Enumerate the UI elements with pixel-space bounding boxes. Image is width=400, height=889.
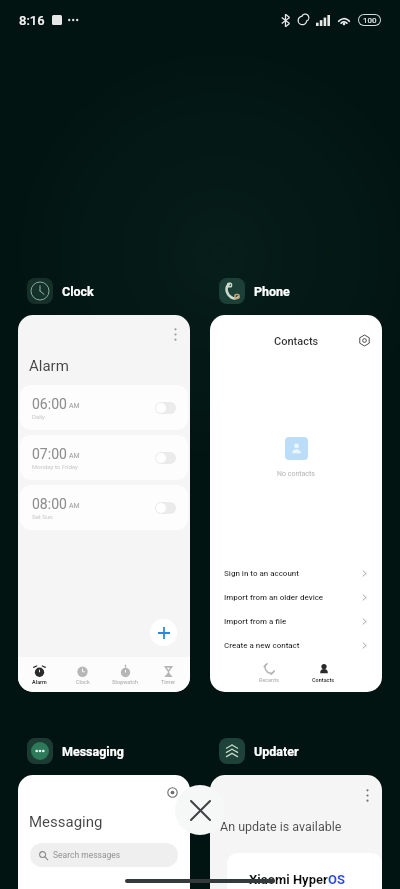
button[interactable]: Close (175, 785, 225, 835)
button[interactable]: Toggle alarm (155, 402, 176, 414)
button[interactable]: Create a new contact (210, 633, 382, 657)
staticText: 07:00 (32, 446, 67, 462)
button[interactable]: Updater (219, 738, 299, 764)
button[interactable]: Timer (147, 665, 190, 685)
staticText: Recents (259, 677, 279, 683)
button[interactable]: Import from a file (210, 609, 382, 633)
staticText: Stopwatch (112, 679, 139, 685)
staticText: An update is available (220, 819, 342, 834)
button[interactable]: Phone (219, 278, 290, 304)
staticText: Sign in to an account (224, 569, 299, 578)
button[interactable]: Alarm (18, 665, 61, 685)
staticText: Xiaomi Hyper (249, 872, 328, 887)
button[interactable]: Import from an older device (210, 585, 382, 609)
staticText: OS (328, 872, 345, 887)
button[interactable]: Toggle alarm (155, 502, 176, 514)
staticText: 8:16 (19, 13, 45, 28)
staticText: Contacts (274, 335, 319, 348)
button[interactable]: Account (167, 787, 178, 798)
button[interactable]: Add alarm (150, 619, 177, 646)
button[interactable]: Messaging (27, 738, 124, 764)
staticText: Daily (32, 413, 45, 420)
staticText: Alarm (29, 357, 69, 375)
staticText: 100 (363, 16, 377, 25)
staticText: Messaging (62, 744, 124, 759)
button[interactable]: Toggle alarm (155, 452, 176, 464)
staticText: Alarm (32, 679, 47, 685)
staticText: Contacts (312, 677, 335, 683)
staticText: Monday to Friday (32, 463, 78, 470)
button[interactable]: 08:00 (20, 485, 188, 530)
button[interactable]: More options (210, 775, 382, 889)
staticText: Messaging (29, 813, 103, 831)
staticText: Clock (76, 679, 90, 685)
button[interactable]: Stopwatch (104, 665, 147, 685)
button[interactable]: Sign in to an account (210, 561, 382, 585)
staticText: 06:00 (32, 396, 67, 412)
button[interactable]: 06:00 (20, 385, 188, 430)
staticText: Timer (161, 679, 176, 685)
staticText: AM (69, 502, 80, 510)
staticText: 08:00 (32, 496, 67, 512)
button[interactable]: Account (18, 775, 190, 889)
staticText: Sat Sun (32, 513, 53, 520)
staticText: Updater (254, 744, 299, 759)
button[interactable]: Contacts (296, 663, 351, 683)
staticText: Import from an older device (224, 593, 324, 602)
button[interactable]: 07:00 (20, 435, 188, 480)
button[interactable]: More options (18, 315, 190, 692)
button[interactable]: More options (174, 328, 177, 341)
staticText: No contacts (277, 470, 315, 478)
button[interactable]: Search messages (30, 843, 178, 867)
button[interactable]: Settings (358, 334, 371, 347)
button[interactable]: Recents (241, 663, 296, 683)
staticText: Create a new contact (224, 641, 300, 650)
staticText: Clock (62, 284, 94, 299)
staticText: AM (69, 402, 80, 410)
button[interactable]: Clock (61, 665, 104, 685)
staticText: Phone (254, 284, 290, 299)
staticText: AM (69, 452, 80, 460)
button[interactable]: More options (366, 789, 369, 802)
button[interactable]: Clock (27, 278, 94, 304)
staticText: Search messages (53, 850, 121, 860)
button[interactable]: Contacts (210, 315, 382, 692)
staticText: Import from a file (224, 617, 287, 626)
